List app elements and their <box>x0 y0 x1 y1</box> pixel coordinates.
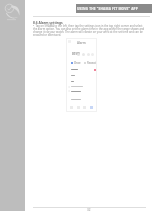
button[interactable] <box>66 67 97 72</box>
button[interactable]: Repeat <box>84 61 96 64</box>
staticText: USING THE "SHAMA FIT MOVE" APP <box>77 7 138 11</box>
staticText: • Tap on SHAMA to the left, then tap the… <box>33 24 146 37</box>
staticText: Repeat <box>87 61 96 64</box>
staticText: Once <box>74 61 81 64</box>
staticText: Alarm <box>77 41 86 45</box>
staticText: 8.6 Alarm settings <box>33 20 63 24</box>
button[interactable] <box>66 79 97 84</box>
button[interactable] <box>66 97 97 102</box>
button[interactable] <box>66 89 97 94</box>
staticText: 32 <box>87 208 91 212</box>
button[interactable] <box>66 39 97 48</box>
button[interactable] <box>66 73 97 78</box>
button[interactable]: Once <box>71 61 81 64</box>
staticText: 07:00 <box>72 52 80 56</box>
button[interactable] <box>66 84 97 89</box>
